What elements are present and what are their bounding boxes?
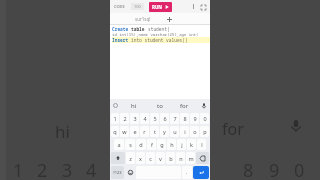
button[interactable]: s	[125, 139, 135, 150]
staticText: h	[170, 141, 174, 148]
staticText: table	[131, 26, 148, 32]
button[interactable]: p	[200, 126, 209, 137]
staticText: q	[113, 128, 117, 135]
staticText: hi	[131, 102, 137, 110]
button[interactable]: m	[186, 152, 195, 164]
staticText: 4	[143, 115, 147, 122]
staticText: CODE	[114, 4, 125, 9]
button[interactable]: d	[136, 139, 146, 150]
staticText: 1	[113, 115, 117, 122]
staticText: u	[173, 128, 177, 135]
button[interactable]: Enter	[193, 166, 209, 179]
button[interactable]: CODE	[112, 3, 127, 10]
button[interactable]: 5	[150, 113, 159, 124]
staticText: n	[179, 155, 183, 162]
button[interactable]: 8	[180, 113, 189, 124]
button[interactable]: j	[177, 139, 186, 150]
button[interactable]: 9	[190, 113, 199, 124]
button[interactable]: w	[120, 126, 129, 137]
button[interactable]: h	[167, 139, 176, 150]
button[interactable]: o	[190, 126, 199, 137]
staticText: t	[154, 128, 156, 135]
staticText: ?123	[113, 170, 122, 175]
staticText: 0	[294, 158, 305, 180]
button[interactable]: RUN	[149, 2, 172, 12]
button[interactable]: 2	[120, 113, 129, 124]
staticText: e	[133, 128, 137, 135]
staticText: r	[143, 128, 146, 135]
staticText: y	[163, 128, 166, 135]
staticText: .	[186, 169, 188, 176]
staticText: 6	[163, 115, 167, 122]
staticText: id int(15),name varchar(25),age int(	[112, 32, 199, 37]
button[interactable]: n	[176, 152, 185, 164]
button[interactable]: Fullscreen	[198, 2, 208, 12]
button[interactable]: v	[156, 152, 165, 164]
button[interactable]: 6	[160, 113, 169, 124]
staticText: hi	[55, 120, 70, 143]
button[interactable]: 1	[111, 113, 119, 124]
staticText: f	[151, 141, 153, 148]
button[interactable]: y	[160, 126, 169, 137]
button[interactable]: c	[146, 152, 155, 164]
staticText: b	[169, 155, 173, 162]
staticText: k	[190, 141, 193, 148]
button[interactable]: Voice input	[197, 99, 210, 112]
button[interactable]: 100	[131, 3, 144, 10]
button[interactable]: Emoji	[125, 166, 135, 179]
staticText: Insert	[112, 37, 131, 43]
staticText: c	[149, 155, 152, 162]
staticText: l	[201, 141, 203, 148]
button[interactable]: 3	[130, 113, 139, 124]
staticText: p	[203, 128, 207, 135]
button[interactable]: ?123	[111, 166, 124, 179]
button[interactable]: k	[187, 139, 196, 150]
button[interactable]: u	[170, 126, 179, 137]
button[interactable]: i	[180, 126, 189, 137]
staticText: d	[139, 141, 143, 148]
button[interactable]: b	[166, 152, 175, 164]
button[interactable]: .	[182, 166, 192, 179]
button[interactable]: r	[140, 126, 149, 137]
button[interactable]: Shift	[111, 152, 125, 164]
staticText: for	[222, 118, 244, 140]
button[interactable]: hi	[121, 99, 147, 112]
button[interactable]: New tab	[164, 14, 174, 24]
button[interactable]: to	[147, 99, 172, 112]
button[interactable]: t	[150, 126, 159, 137]
staticText: 5	[153, 115, 157, 122]
button[interactable]: 7	[170, 113, 179, 124]
button[interactable]: Backspace	[196, 152, 209, 164]
button[interactable]: z	[126, 152, 135, 164]
button[interactable]: g	[157, 139, 166, 150]
staticText: s	[129, 141, 132, 148]
button[interactable]: sur1sql	[132, 14, 154, 24]
staticText: 8	[183, 115, 187, 122]
staticText: m	[188, 155, 194, 162]
button[interactable]: l	[197, 139, 206, 150]
staticText: into student values()	[131, 37, 188, 43]
staticText: v	[159, 155, 162, 162]
button[interactable]: a	[114, 139, 124, 150]
button[interactable]: 0	[200, 113, 209, 124]
staticText: g	[160, 141, 164, 148]
staticText: 1	[13, 158, 24, 180]
staticText: Create	[112, 26, 131, 32]
button[interactable]: for	[172, 99, 197, 112]
staticText: for	[180, 102, 189, 110]
staticText: RUN	[152, 4, 163, 10]
button[interactable]: q	[111, 126, 119, 137]
staticText: 2	[37, 158, 48, 180]
button[interactable]: Keyboard settings	[110, 100, 121, 111]
staticText: 2	[123, 115, 127, 122]
button[interactable]: f	[147, 139, 156, 150]
button[interactable]: More options	[189, 2, 198, 11]
staticText: 9	[193, 115, 197, 122]
staticText: 3	[133, 115, 137, 122]
button[interactable]: e	[130, 126, 139, 137]
button[interactable]: x	[136, 152, 145, 164]
button[interactable]: 4	[140, 113, 149, 124]
staticText: x	[139, 155, 142, 162]
staticText: student(	[148, 26, 170, 32]
